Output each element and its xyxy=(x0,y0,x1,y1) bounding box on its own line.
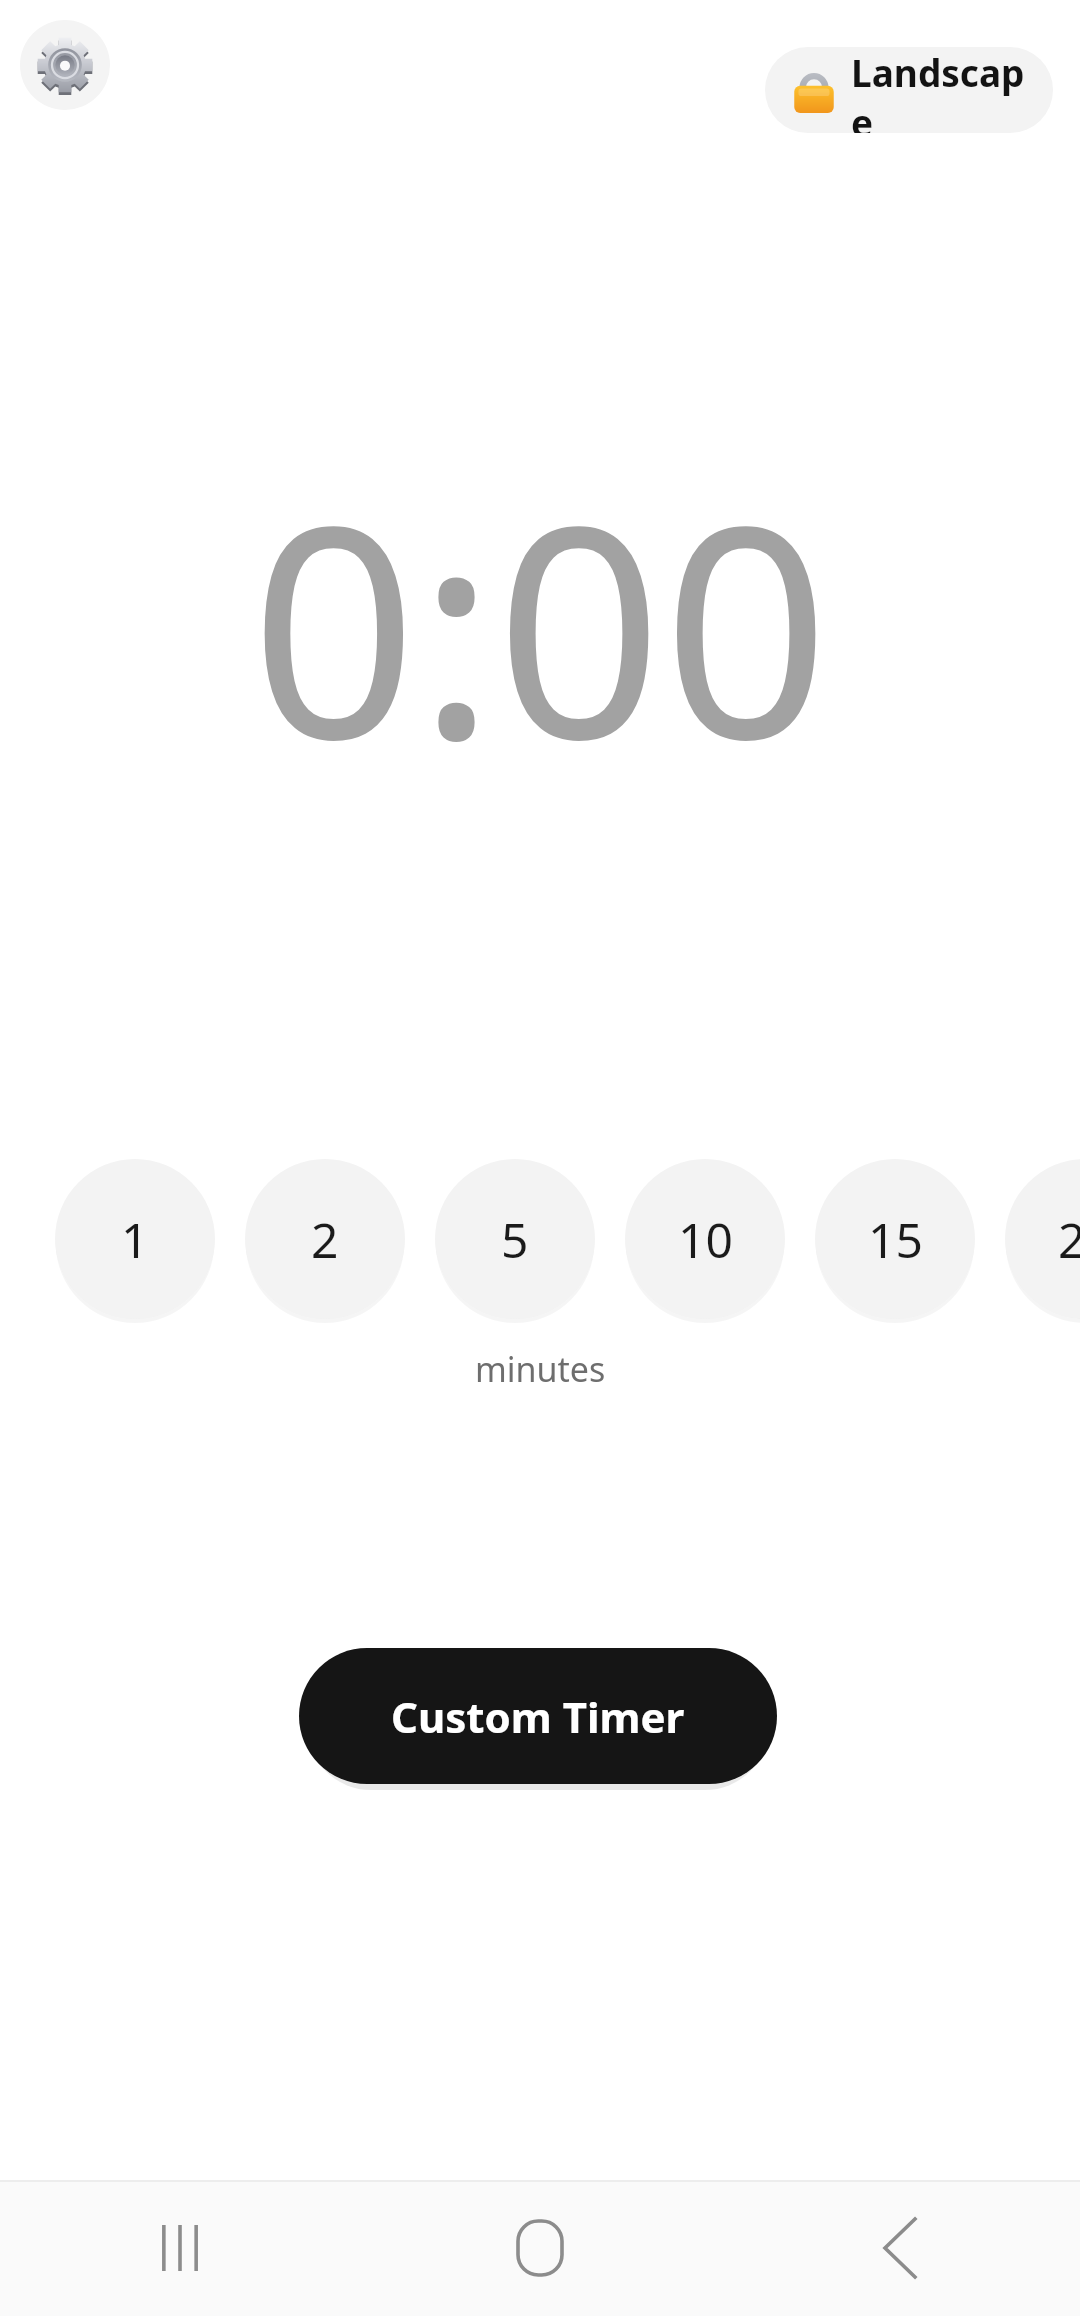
staticText: minutes xyxy=(475,1346,606,1392)
staticText: 1 xyxy=(121,1207,149,1272)
staticText: Custom Timer xyxy=(391,1688,685,1745)
button[interactable]: Landscape xyxy=(765,47,1053,133)
button[interactable]: 5 xyxy=(435,1159,595,1319)
staticText: 0:00 xyxy=(250,426,830,824)
button[interactable]: Custom Timer xyxy=(299,1648,777,1784)
staticText: 10 xyxy=(678,1207,733,1272)
button[interactable]: 1 xyxy=(55,1159,215,1319)
button[interactable]: 20 xyxy=(1005,1159,1080,1319)
button[interactable]: Recent apps xyxy=(0,2180,360,2316)
button[interactable]: Back xyxy=(720,2180,1080,2316)
staticText: 20 xyxy=(1058,1207,1080,1272)
button[interactable]: 2 xyxy=(245,1159,405,1319)
staticText: 5 xyxy=(501,1207,529,1272)
button[interactable]: 10 xyxy=(625,1159,785,1319)
button[interactable]: 15 xyxy=(815,1159,975,1319)
staticText: Landscape xyxy=(851,47,1025,133)
staticText: 15 xyxy=(868,1207,923,1272)
button[interactable]: Home xyxy=(360,2180,720,2316)
staticText: 2 xyxy=(311,1207,339,1272)
button[interactable]: Settings xyxy=(20,20,110,110)
